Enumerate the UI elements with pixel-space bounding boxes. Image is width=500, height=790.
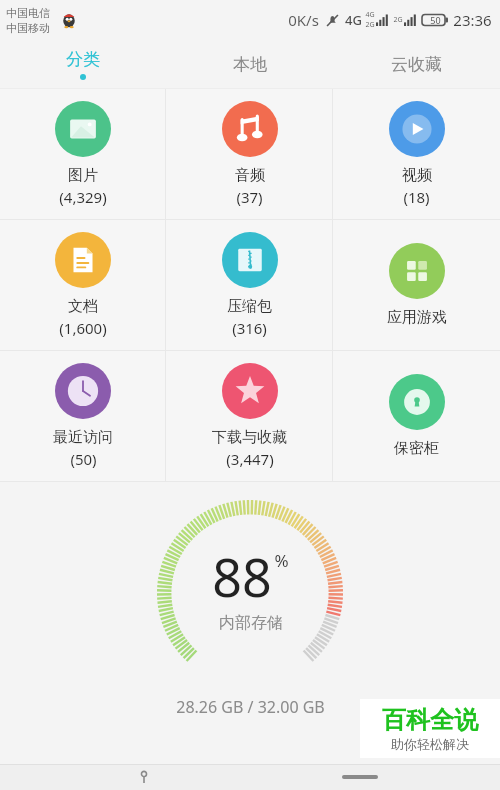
staticText: 最近访问	[53, 428, 113, 447]
staticText: 23:36	[453, 10, 492, 30]
staticText: (316)	[232, 318, 267, 338]
button[interactable]: 应用游戏	[333, 220, 500, 350]
staticText: (3,447)	[226, 449, 274, 469]
other: Home	[342, 775, 378, 779]
staticText: 2G	[393, 15, 403, 25]
staticText: (18)	[403, 187, 430, 207]
button[interactable]: 音频	[166, 89, 333, 219]
button[interactable]: 下载与收藏	[166, 351, 333, 481]
staticText: %	[274, 549, 289, 572]
staticText: 50	[430, 14, 441, 26]
staticText: 压缩包	[227, 297, 272, 316]
staticText: 4G	[365, 10, 375, 20]
staticText: 文档	[68, 297, 98, 316]
staticText: 28.26 GB / 32.00 GB	[176, 696, 325, 718]
button[interactable]: 文档	[0, 220, 166, 350]
button[interactable]: 保密柜	[333, 351, 500, 481]
staticText: 88	[212, 541, 272, 612]
staticText: 本地	[233, 54, 267, 75]
button[interactable]: 分类	[0, 40, 166, 88]
other: Menu	[137, 770, 151, 784]
button[interactable]: 本地	[166, 40, 333, 88]
staticText: 中国移动	[6, 21, 50, 35]
button[interactable]: 云收藏	[333, 40, 500, 88]
staticText: (4,329)	[59, 187, 107, 207]
button[interactable]: 压缩包	[166, 220, 333, 350]
staticText: 应用游戏	[387, 308, 447, 327]
staticText: (1,600)	[59, 318, 107, 338]
staticText: (50)	[70, 449, 97, 469]
button[interactable]: 视频	[333, 89, 500, 219]
staticText: 百科全说	[382, 705, 478, 735]
staticText: 4G	[345, 11, 362, 29]
staticText: 中国电信	[6, 6, 50, 20]
staticText: 分类	[66, 49, 100, 70]
staticText: 音频	[235, 166, 265, 185]
staticText: 0K/s	[288, 10, 319, 30]
staticText: 助你轻松解决	[391, 736, 469, 752]
staticText: 保密柜	[394, 439, 439, 458]
button[interactable]: 最近访问	[0, 351, 166, 481]
staticText: 下载与收藏	[212, 428, 287, 447]
staticText: 视频	[402, 166, 432, 185]
button[interactable]: 图片	[0, 89, 166, 219]
staticText: 图片	[68, 166, 98, 185]
staticText: 云收藏	[391, 54, 442, 75]
staticText: 2G	[365, 20, 375, 30]
staticText: (37)	[236, 187, 263, 207]
staticText: 内部存储	[219, 613, 283, 633]
